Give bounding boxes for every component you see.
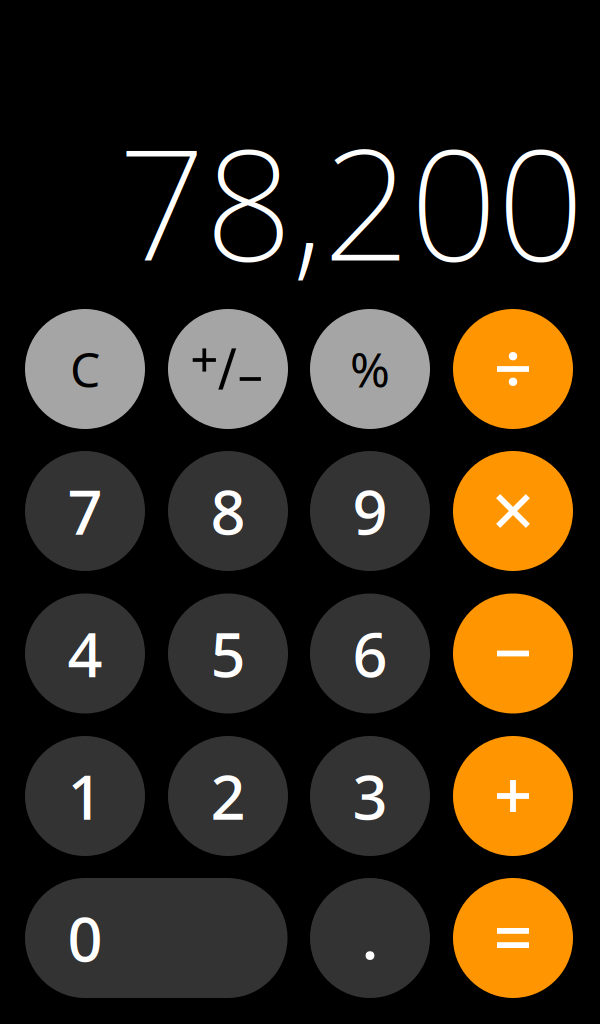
button[interactable]: Subtract [453, 593, 573, 713]
button[interactable]: 6 [310, 593, 430, 713]
button[interactable]: C [25, 309, 145, 429]
staticText: 78,200 [118, 99, 584, 303]
staticText: 7 [67, 470, 102, 552]
button[interactable]: 4 [25, 593, 145, 713]
staticText: 6 [352, 613, 387, 694]
button[interactable]: Multiply [453, 451, 573, 571]
staticText: 8 [210, 470, 245, 552]
button[interactable]: 2 [168, 736, 288, 856]
staticText: 4 [67, 613, 102, 694]
button[interactable]: 1 [25, 736, 145, 856]
button[interactable]: 7 [25, 451, 145, 571]
button[interactable]: Decimal point [310, 878, 430, 998]
button[interactable]: Equals [453, 878, 573, 998]
button[interactable]: % [310, 309, 430, 429]
button[interactable]: 0 [25, 878, 287, 998]
button[interactable]: Divide [453, 309, 573, 429]
button[interactable]: 9 [310, 451, 430, 571]
staticText: 3 [352, 755, 387, 837]
staticText: 0 [67, 897, 102, 979]
staticText: 1 [67, 755, 102, 837]
button[interactable]: 8 [168, 451, 288, 571]
staticText: % [350, 337, 390, 401]
button[interactable]: 3 [310, 736, 430, 856]
staticText: 5 [210, 613, 245, 694]
staticText: C [70, 337, 100, 401]
button[interactable]: Toggle sign [168, 309, 288, 429]
staticText: 2 [210, 755, 245, 837]
button[interactable]: Add [453, 736, 573, 856]
staticText: 9 [352, 470, 387, 552]
button[interactable]: 5 [168, 593, 288, 713]
